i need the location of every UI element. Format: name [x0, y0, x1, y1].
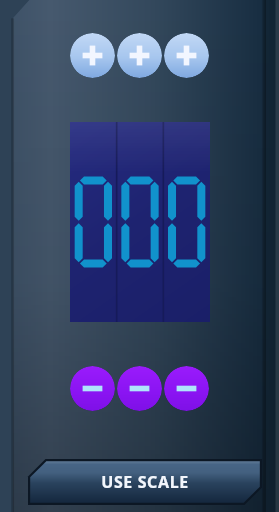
button[interactable]: Decrease digit 3 — [164, 366, 209, 411]
button[interactable]: Decrease digit 1 — [70, 366, 115, 411]
button[interactable]: Decrease digit 2 — [117, 366, 162, 411]
staticText: USE SCALE — [101, 471, 189, 493]
button[interactable]: Increase digit 1 — [70, 33, 115, 78]
button[interactable]: Increase digit 3 — [164, 33, 209, 78]
button[interactable]: USE SCALE — [28, 459, 262, 505]
button[interactable]: Increase digit 2 — [117, 33, 162, 78]
